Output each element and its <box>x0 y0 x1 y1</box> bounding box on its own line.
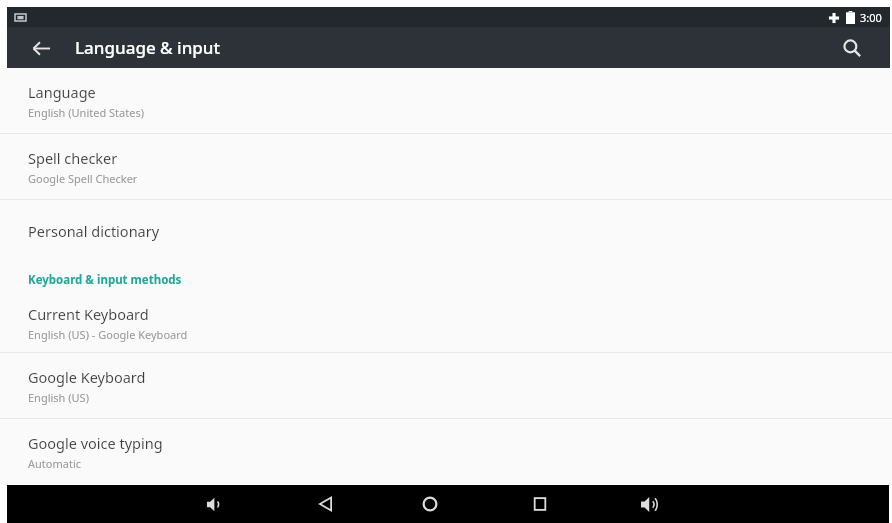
button[interactable]: Recents <box>7 485 557 523</box>
staticText: Google Keyboard <box>28 367 146 387</box>
staticText: Google voice typing <box>28 433 163 453</box>
button[interactable]: Personal dictionary <box>0 200 892 262</box>
staticText: Personal dictionary <box>28 221 160 241</box>
staticText: Google Spell Checker <box>28 171 138 186</box>
button[interactable]: Volume up <box>7 485 667 523</box>
staticText: Language & input <box>75 36 221 59</box>
staticText: Current Keyboard <box>28 304 149 324</box>
button[interactable]: Language <box>0 68 892 133</box>
staticText: Automatic <box>28 456 81 471</box>
button[interactable]: Google voice typing <box>0 419 892 484</box>
staticText: English (US) - Google Keyboard <box>28 327 188 342</box>
button[interactable]: Spell checker <box>0 134 892 199</box>
button[interactable]: Google Keyboard <box>0 353 892 418</box>
button[interactable]: Search <box>832 28 872 68</box>
button[interactable]: Volume down <box>7 485 232 523</box>
button[interactable]: Back <box>7 485 343 523</box>
button[interactable]: Back <box>21 28 61 68</box>
button[interactable]: Home <box>7 485 447 523</box>
staticText: English (US) <box>28 390 89 405</box>
staticText: Language <box>28 82 96 102</box>
staticText: English (United States) <box>28 105 144 120</box>
button[interactable]: Current Keyboard <box>0 294 892 352</box>
staticText: 3:00 <box>860 10 882 25</box>
staticText: Keyboard & input methods <box>28 272 182 288</box>
staticText: Spell checker <box>28 148 118 168</box>
